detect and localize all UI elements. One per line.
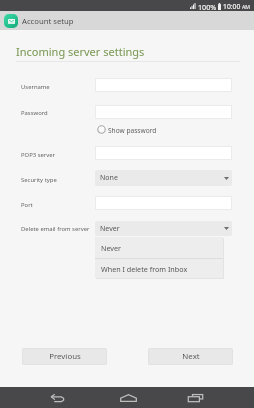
button[interactable]: Home [113, 389, 143, 406]
button[interactable]: Never [95, 221, 232, 236]
staticText: Previous [49, 351, 81, 362]
button[interactable]: Email [4, 14, 18, 28]
button[interactable]: Previous [22, 348, 107, 365]
button[interactable]: None [95, 170, 232, 186]
staticText: POP3 server [21, 151, 55, 159]
button[interactable] [95, 105, 232, 119]
staticText: Port [21, 201, 33, 209]
button[interactable] [95, 146, 232, 160]
staticText: Delete email from server [21, 225, 90, 233]
button[interactable]: Never [95, 237, 223, 258]
button[interactable] [95, 78, 232, 92]
staticText: Show password [108, 126, 157, 135]
staticText: Account setup [22, 16, 74, 26]
button[interactable] [95, 196, 232, 210]
staticText: 100% [198, 2, 217, 12]
staticText: When I delete from Inbox [101, 264, 188, 274]
staticText: Incoming server settings [16, 44, 145, 59]
staticText: AM [242, 3, 251, 10]
staticText: 10:00 [223, 2, 241, 11]
staticText: Next [182, 351, 200, 362]
button[interactable]: Recent apps [181, 389, 211, 406]
button[interactable]: Back [43, 389, 73, 406]
staticText: Never [100, 224, 120, 234]
staticText: Security type [21, 176, 57, 184]
staticText: Username [21, 83, 50, 91]
staticText: Never [101, 243, 122, 253]
staticText: None [100, 173, 118, 183]
staticText: Password [21, 109, 48, 117]
button[interactable]: Show password [96, 123, 159, 137]
button[interactable]: Next [148, 348, 233, 365]
button[interactable]: When I delete from Inbox [95, 259, 223, 278]
